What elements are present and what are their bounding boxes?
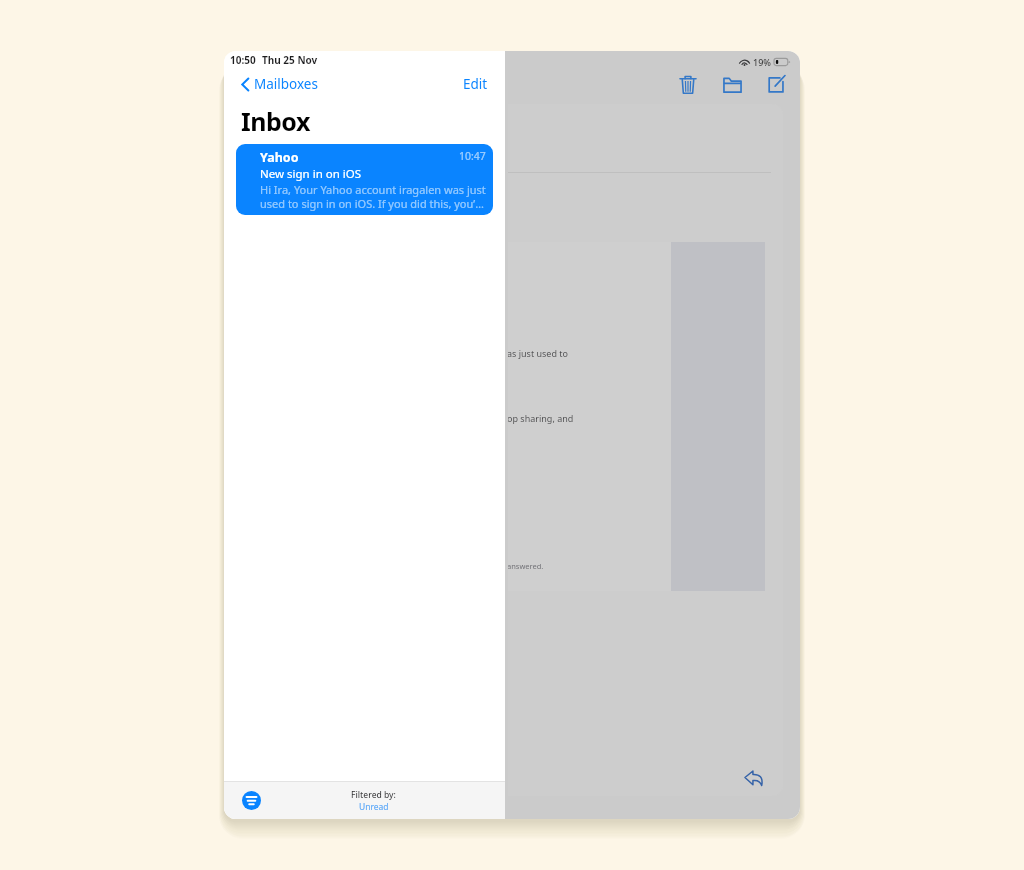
staticText: as just used to [508, 347, 569, 359]
staticText: Hi Ira, Your Yahoo account iragalen was … [260, 182, 486, 211]
button[interactable]: Yahoo [236, 144, 493, 215]
button[interactable]: Delete [673, 69, 703, 99]
button[interactable]: Filter [242, 791, 261, 810]
staticText: Yahoo [260, 149, 299, 166]
staticText: 10:47 [459, 149, 486, 163]
button[interactable]: Reply [740, 765, 766, 791]
staticText: 10:50 [230, 53, 256, 67]
staticText: 19% [753, 56, 771, 68]
staticText: op sharing, and [508, 412, 574, 424]
button[interactable]: Edit [463, 75, 488, 93]
button[interactable]: Mailboxes [241, 75, 318, 93]
staticText: answered. [508, 561, 544, 571]
staticText: Thu 25 Nov [262, 53, 318, 67]
button[interactable]: Move to folder [717, 69, 747, 99]
staticText: Filtered by: [351, 789, 396, 801]
button[interactable]: Compose [761, 69, 791, 99]
staticText: Edit [463, 75, 488, 93]
staticText: Inbox [241, 104, 310, 138]
staticText: Unread [359, 801, 389, 813]
staticText: Mailboxes [254, 75, 318, 93]
staticText: New sign in on iOS [260, 166, 362, 182]
